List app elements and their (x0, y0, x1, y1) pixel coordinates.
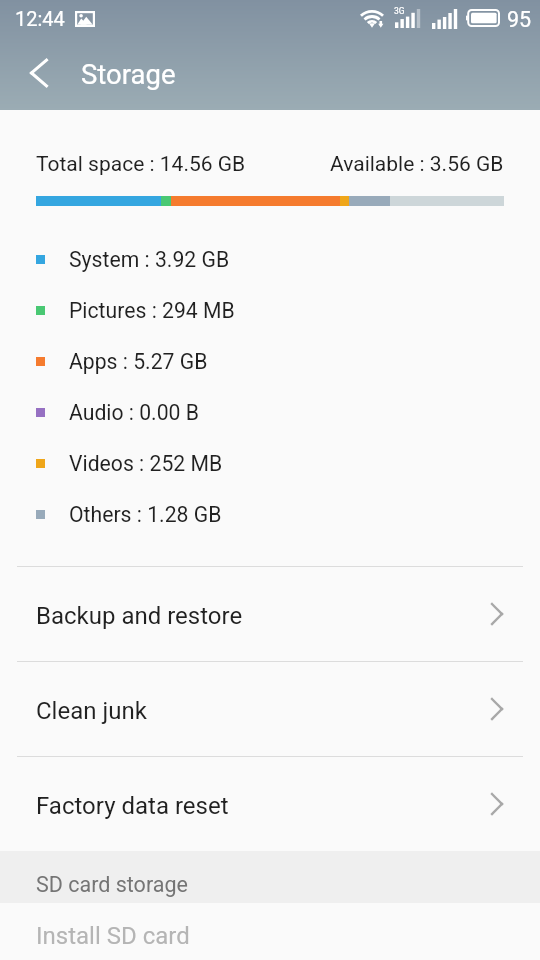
staticText: System : 3.92 GB (69, 247, 230, 272)
staticText: Others : 1.28 GB (69, 502, 222, 527)
staticText: Backup and restore (36, 602, 491, 630)
other: Mobile signal (395, 9, 421, 28)
button[interactable]: Back (23, 51, 57, 95)
button[interactable]: Install SD card (0, 903, 540, 960)
button[interactable]: Pictures : 294 MB (0, 285, 540, 336)
staticText: Pictures : 294 MB (69, 298, 235, 323)
staticText: Videos : 252 MB (69, 451, 223, 476)
staticText: 95 (507, 7, 532, 32)
staticText: SD card storage (36, 872, 188, 897)
staticText: Available : 3.56 GB (330, 152, 504, 177)
button[interactable]: Backup and restore (0, 567, 540, 661)
staticText: Factory data reset (36, 792, 491, 820)
staticText: Apps : 5.27 GB (69, 349, 208, 374)
button[interactable]: Videos : 252 MB (0, 438, 540, 489)
button[interactable]: Apps : 5.27 GB (0, 336, 540, 387)
staticText: Clean junk (36, 697, 491, 725)
other: Battery 95 percent (466, 9, 500, 27)
staticText: 3G (394, 6, 405, 16)
staticText: Install SD card (36, 922, 190, 950)
staticText: Storage (81, 58, 176, 90)
staticText: 12:44 (15, 7, 65, 30)
button[interactable]: Factory data reset (0, 757, 540, 851)
button[interactable]: Audio : 0.00 B (0, 387, 540, 438)
other: Screenshot captured (75, 11, 95, 27)
other: Wi-Fi connected (359, 8, 387, 29)
button[interactable]: Others : 1.28 GB (0, 489, 540, 540)
button[interactable]: Clean junk (0, 662, 540, 756)
button[interactable]: System : 3.92 GB (0, 234, 540, 285)
staticText: Total space : 14.56 GB (36, 152, 246, 177)
other: Mobile signal (432, 9, 458, 29)
staticText: Audio : 0.00 B (69, 400, 199, 425)
